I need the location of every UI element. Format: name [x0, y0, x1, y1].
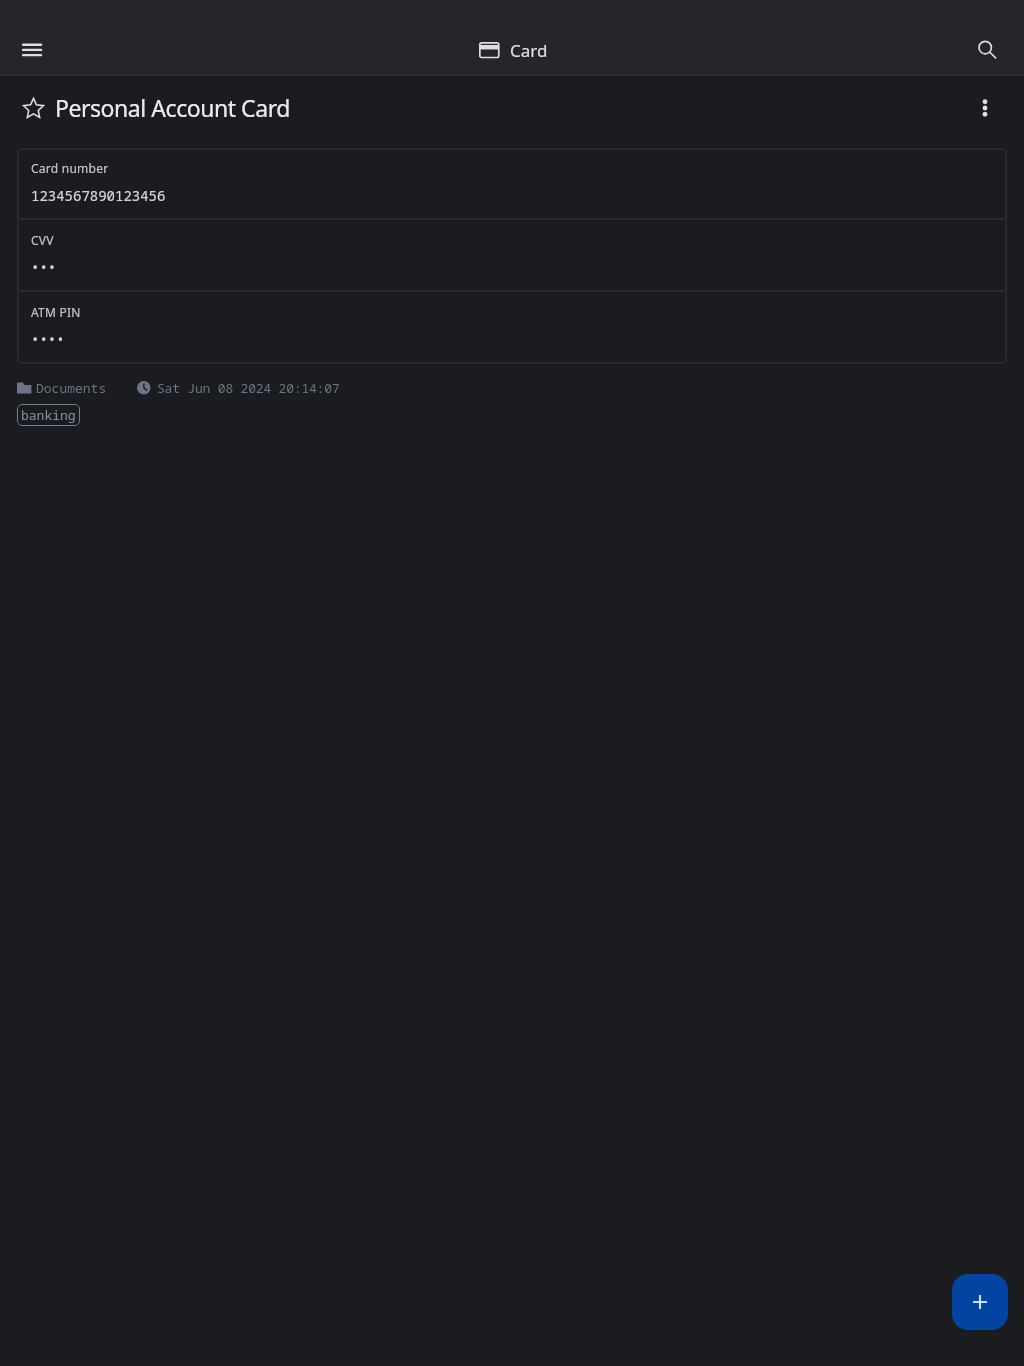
- button[interactable]: Card number: [17, 148, 1007, 218]
- staticText: CVV: [31, 232, 54, 248]
- staticText: •••: [31, 258, 57, 277]
- staticText: Sat Jun 08 2024 20:14:07: [157, 379, 340, 397]
- staticText: Card number: [31, 160, 109, 176]
- button[interactable]: ATM PIN: [17, 292, 1007, 364]
- staticText: banking: [21, 406, 76, 424]
- staticText: Personal Account Card: [55, 92, 290, 123]
- button[interactable]: Add: [952, 1274, 1008, 1330]
- staticText: ••••: [31, 330, 65, 349]
- button[interactable]: Open navigation menu: [12, 30, 52, 70]
- staticText: ATM PIN: [31, 304, 81, 320]
- staticText: Documents: [36, 379, 107, 397]
- button[interactable]: CVV: [17, 220, 1007, 290]
- button[interactable]: Favourite: [16, 91, 50, 125]
- button[interactable]: Search: [967, 30, 1007, 70]
- button[interactable]: More options: [966, 89, 1004, 127]
- button[interactable]: banking: [17, 404, 80, 426]
- staticText: 1234567890123456: [31, 186, 166, 205]
- staticText: Card: [510, 39, 548, 62]
